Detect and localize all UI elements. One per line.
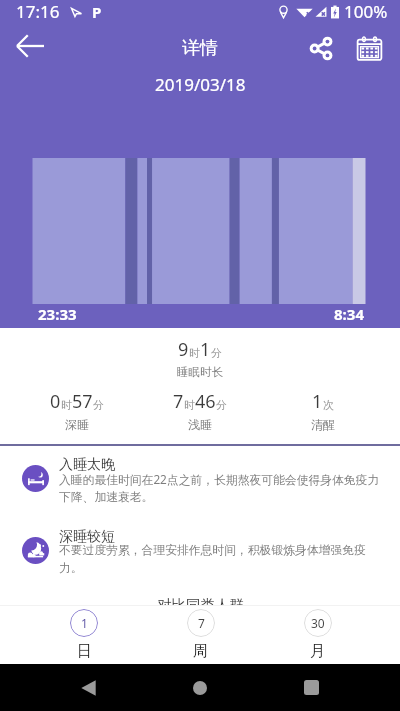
staticText: 不要过度劳累，合理安排作息时间，积极锻炼身体增强免疫力。 [59, 543, 380, 575]
staticText: 0 [50, 389, 61, 414]
staticText: 详情 [182, 37, 218, 60]
staticText: 时 [189, 346, 200, 360]
staticText: 1 [200, 337, 211, 362]
button[interactable]: Back [6, 24, 54, 68]
staticText: 30 [311, 615, 325, 631]
staticText: 23:33 [38, 304, 77, 324]
button[interactable]: 0 [16, 389, 138, 432]
staticText: 17:16 [16, 0, 60, 23]
staticText: 深睡较短 [59, 528, 115, 546]
button[interactable]: 入睡太晚 [0, 456, 400, 507]
staticText: 睡眠时长 [177, 365, 223, 379]
staticText: 时 [61, 398, 72, 412]
button[interactable]: Home [176, 664, 224, 711]
staticText: 入睡的最佳时间在22点之前，长期熬夜可能会使得身体免疫力下降、加速衰老。 [59, 471, 380, 504]
staticText: 入睡太晚 [59, 456, 115, 474]
staticText: 7 [198, 615, 205, 631]
staticText: 对比同类人群 [157, 596, 244, 614]
staticText: 清醒 [311, 417, 335, 432]
button[interactable]: 对比同类人群 [0, 596, 400, 614]
button[interactable]: 7 [138, 389, 261, 432]
staticText: 分 [211, 346, 222, 360]
button[interactable]: 1 [261, 389, 384, 432]
staticText: 57 [72, 389, 93, 414]
staticText: 时 [184, 398, 195, 412]
staticText: 2019/03/18 [155, 73, 246, 96]
staticText: 分 [93, 398, 104, 412]
button[interactable]: Recents [287, 664, 335, 711]
button[interactable]: Back [64, 664, 112, 711]
staticText: 1 [81, 615, 88, 631]
button[interactable]: Calendar [346, 26, 392, 70]
staticText: 浅睡 [188, 417, 212, 432]
button[interactable]: 30 [259, 609, 376, 661]
button[interactable]: 1 [26, 609, 142, 661]
staticText: 次 [323, 398, 334, 412]
staticText: 周 [193, 642, 208, 661]
staticText: 月 [310, 642, 325, 661]
staticText: 1 [312, 389, 323, 414]
staticText: 100% [344, 0, 388, 23]
staticText: 分 [216, 398, 227, 412]
button[interactable]: 深睡较短 [0, 528, 400, 578]
staticText: 7 [173, 389, 184, 414]
staticText: 深睡 [65, 417, 89, 432]
staticText: 9 [178, 337, 189, 362]
staticText: 8:34 [334, 304, 364, 324]
button[interactable]: Share [298, 26, 344, 70]
staticText: 日 [77, 642, 92, 661]
staticText: 46 [195, 389, 216, 414]
button[interactable]: 7 [142, 609, 259, 661]
staticText: P [92, 2, 102, 22]
